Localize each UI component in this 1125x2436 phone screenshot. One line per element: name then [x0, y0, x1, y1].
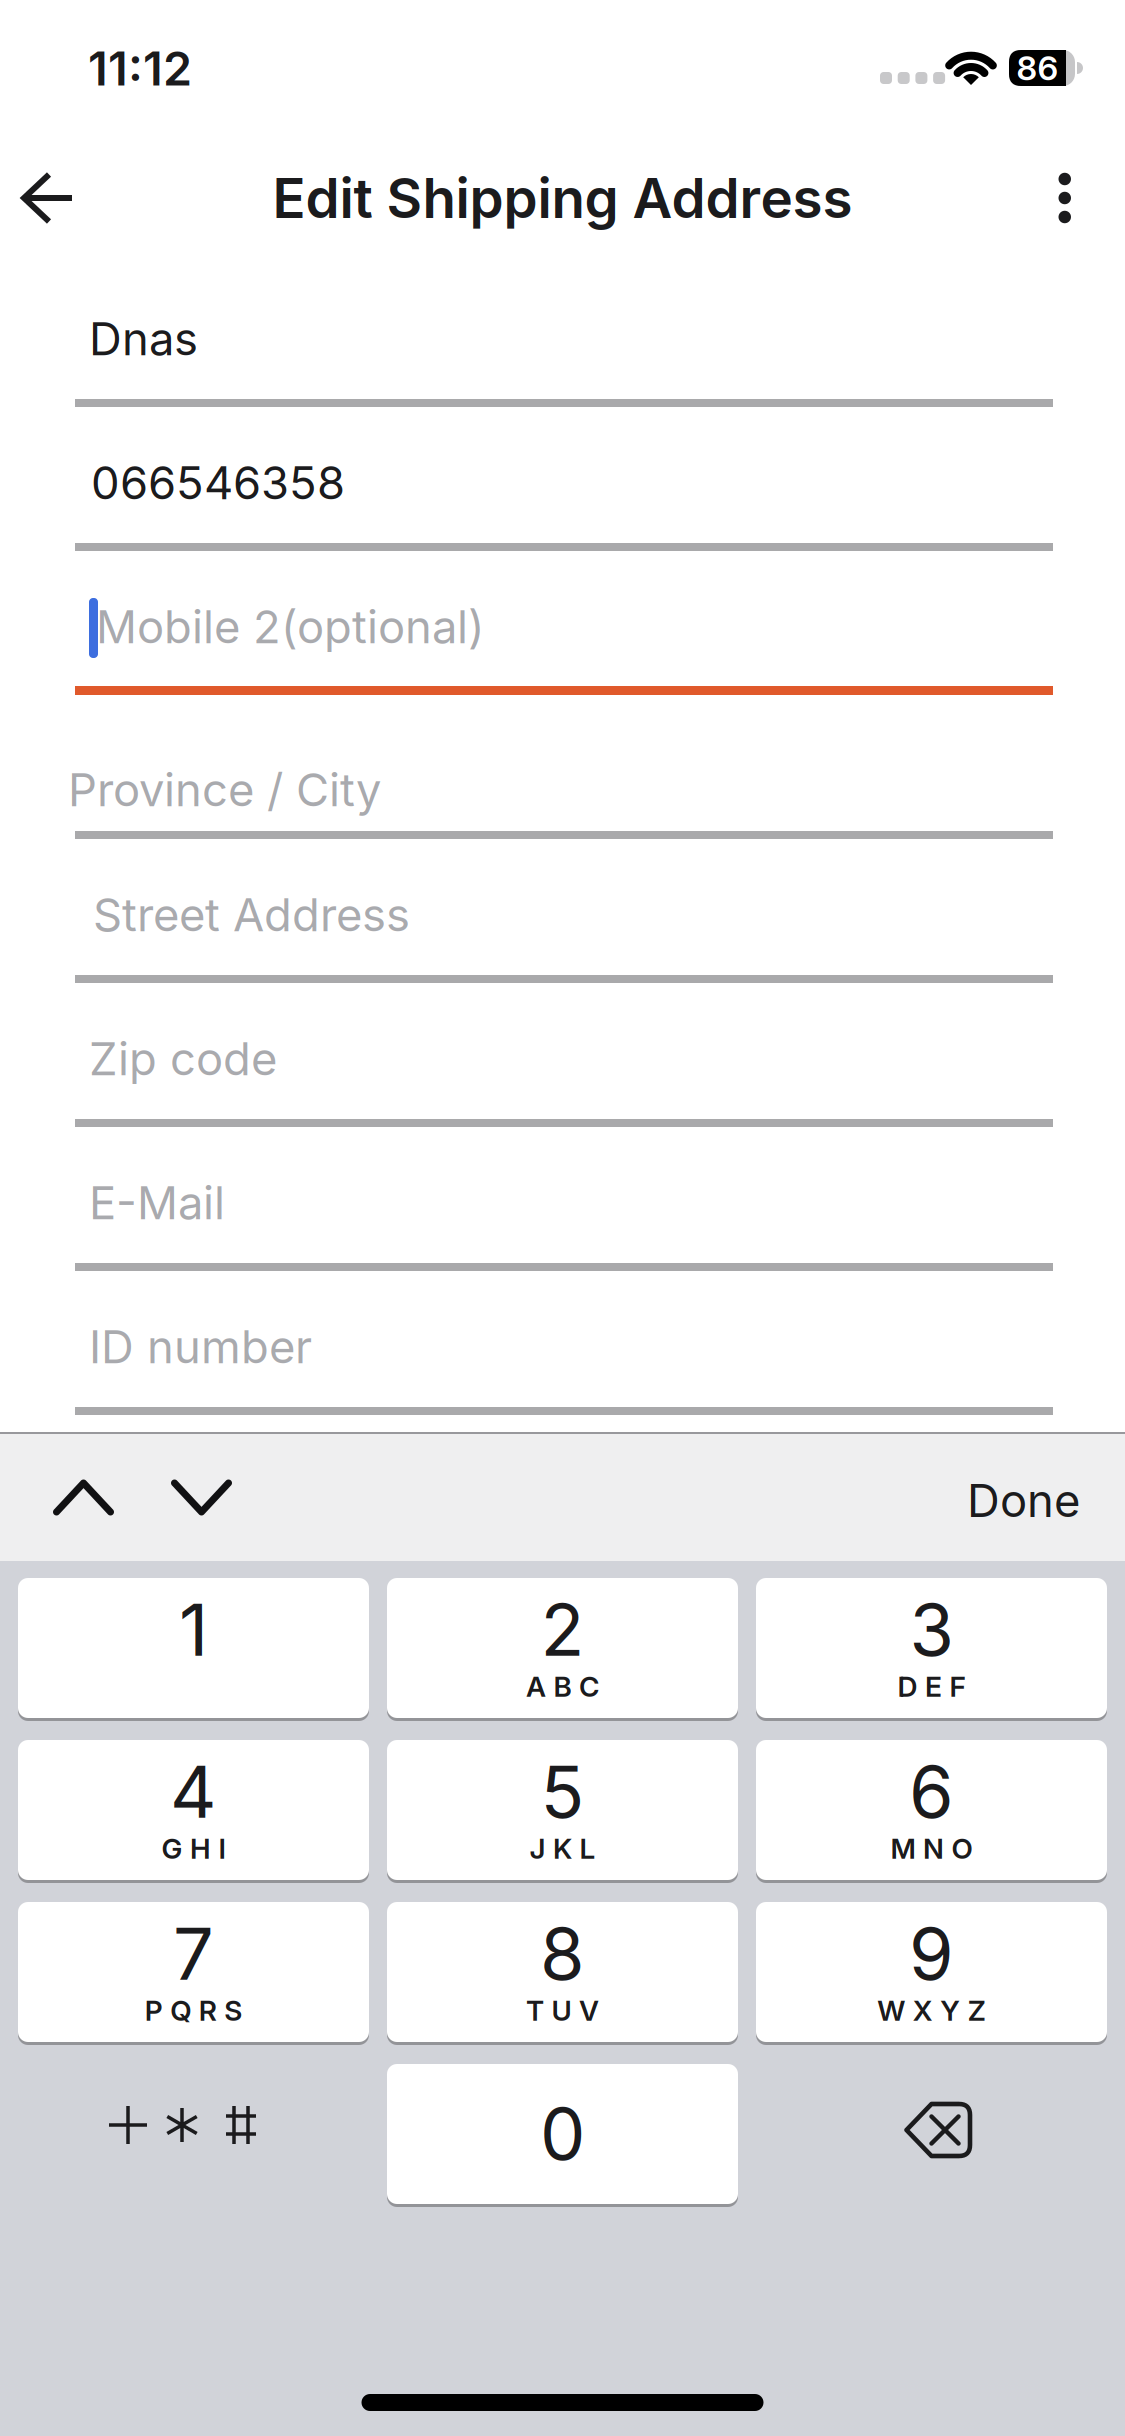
- staticText: 2: [540, 1587, 584, 1672]
- staticText: MNO: [890, 1832, 972, 1865]
- button[interactable]: Delete: [756, 2064, 1107, 2204]
- button[interactable]: 1: [18, 1578, 369, 1718]
- button[interactable]: 6: [756, 1740, 1107, 1880]
- button[interactable]: Done: [967, 1441, 1125, 1554]
- staticText: 5: [540, 1749, 584, 1834]
- staticText: Zip code: [89, 1032, 277, 1085]
- staticText: ID number: [89, 1320, 312, 1373]
- button[interactable]: 8: [387, 1902, 738, 2042]
- staticText: 8: [540, 1911, 585, 1996]
- staticText: 3: [909, 1587, 953, 1672]
- staticText: Done: [967, 1474, 1080, 1527]
- staticText: 9: [909, 1911, 954, 1996]
- button[interactable]: More options: [1058, 153, 1125, 243]
- staticText: 066546358: [91, 456, 345, 509]
- staticText: E-Mail: [89, 1176, 225, 1229]
- staticText: 1: [179, 1587, 208, 1672]
- button[interactable]: 3: [756, 1578, 1107, 1718]
- button[interactable]: Previous field: [0, 1439, 114, 1555]
- staticText: Street Address: [93, 888, 410, 941]
- button[interactable]: 2: [387, 1578, 738, 1718]
- staticText: Mobile 2(optional): [96, 600, 485, 653]
- staticText: Dnas: [89, 312, 198, 365]
- button[interactable]: Next field: [114, 1439, 232, 1555]
- button[interactable]: Symbols: [18, 2064, 369, 2204]
- button[interactable]: Back: [0, 151, 75, 244]
- staticText: Province / City: [68, 763, 381, 816]
- staticText: 11:12: [88, 41, 192, 96]
- button[interactable]: 5: [387, 1740, 738, 1880]
- button[interactable]: 0: [387, 2064, 738, 2204]
- staticText: WXYZ: [877, 1994, 986, 2027]
- button[interactable]: 4: [18, 1740, 369, 1880]
- staticText: TUV: [526, 1994, 599, 2027]
- staticText: GHI: [161, 1832, 225, 1865]
- staticText: ABC: [526, 1670, 599, 1703]
- staticText: 86: [1016, 48, 1058, 88]
- button[interactable]: 7: [18, 1902, 369, 2042]
- staticText: 7: [173, 1911, 214, 1996]
- staticText: JKL: [529, 1832, 595, 1865]
- staticText: Edit Shipping Address: [272, 166, 852, 230]
- staticText: 6: [909, 1749, 954, 1834]
- staticText: 4: [170, 1749, 217, 1834]
- staticText: PQRS: [145, 1994, 242, 2027]
- staticText: DEF: [897, 1670, 965, 1703]
- staticText: 0: [540, 2091, 585, 2176]
- button[interactable]: 9: [756, 1902, 1107, 2042]
